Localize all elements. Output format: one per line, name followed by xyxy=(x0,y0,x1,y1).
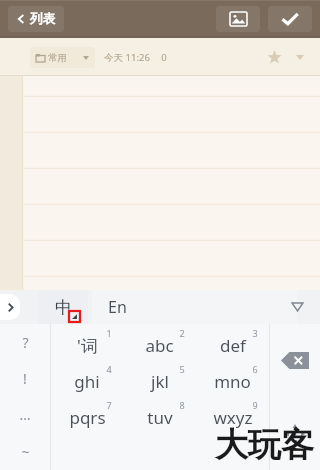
staticText: … xyxy=(19,405,31,424)
button[interactable]: 5 xyxy=(123,360,196,396)
staticText: def xyxy=(220,334,246,357)
button[interactable]: Insert picture xyxy=(216,6,260,32)
staticText: En xyxy=(108,296,127,318)
button[interactable] xyxy=(196,433,269,470)
button[interactable]: Backspace xyxy=(270,324,320,397)
staticText: wxyz xyxy=(213,406,253,429)
button[interactable]: Favorite xyxy=(262,45,286,69)
button[interactable]: 3 xyxy=(196,324,269,360)
button[interactable]: 2 xyxy=(123,324,196,360)
staticText: ! xyxy=(23,369,27,388)
staticText: 中 xyxy=(55,297,72,318)
staticText: 5 xyxy=(179,363,185,375)
staticText: 列表 xyxy=(30,11,55,27)
staticText: 9 xyxy=(252,399,258,411)
staticText: 7 xyxy=(106,399,112,411)
button[interactable]: 常用 xyxy=(30,47,95,68)
button[interactable]: 6 xyxy=(196,360,269,396)
button[interactable]: ? xyxy=(0,324,50,360)
staticText: abc xyxy=(145,334,174,357)
button[interactable]: ~ xyxy=(0,433,50,470)
button[interactable]: … xyxy=(0,396,50,433)
staticText: 今天 11:26 xyxy=(104,51,150,64)
staticText: 2 xyxy=(179,327,185,339)
button[interactable]: 1 xyxy=(51,324,123,360)
button[interactable]: Expand keyboard xyxy=(0,294,20,320)
staticText: ? xyxy=(22,333,29,352)
button[interactable]: 9 xyxy=(196,396,269,433)
button[interactable]: 7 xyxy=(51,396,123,433)
staticText: ~ xyxy=(21,442,30,461)
button[interactable]: Done xyxy=(268,6,312,32)
staticText: 6 xyxy=(252,363,258,375)
button[interactable]: 4 xyxy=(51,360,123,396)
button[interactable]: 8 xyxy=(123,396,196,433)
staticText: 1 xyxy=(106,327,112,339)
button[interactable]: En xyxy=(92,290,297,324)
button[interactable]: Move cursor xyxy=(270,397,320,470)
staticText: '词 xyxy=(77,334,98,357)
staticText: 4 xyxy=(106,363,112,375)
staticText: tuv xyxy=(147,406,173,429)
staticText: 大玩客 xyxy=(215,424,314,466)
staticText: 3 xyxy=(252,327,258,339)
staticText: ghi xyxy=(74,370,100,393)
staticText: 0 xyxy=(161,51,167,64)
button[interactable]: 中 xyxy=(38,290,88,324)
button[interactable]: ! xyxy=(0,360,50,396)
button[interactable]: Hide keyboard xyxy=(286,296,308,318)
button[interactable]: 列表 xyxy=(8,6,64,32)
staticText: 常用 xyxy=(48,52,67,64)
button[interactable] xyxy=(0,76,320,290)
staticText: mno xyxy=(214,370,251,393)
staticText: jkl xyxy=(151,370,169,393)
staticText: pqrs xyxy=(69,406,106,429)
staticText: 8 xyxy=(179,399,185,411)
button[interactable]: More options xyxy=(290,47,310,67)
